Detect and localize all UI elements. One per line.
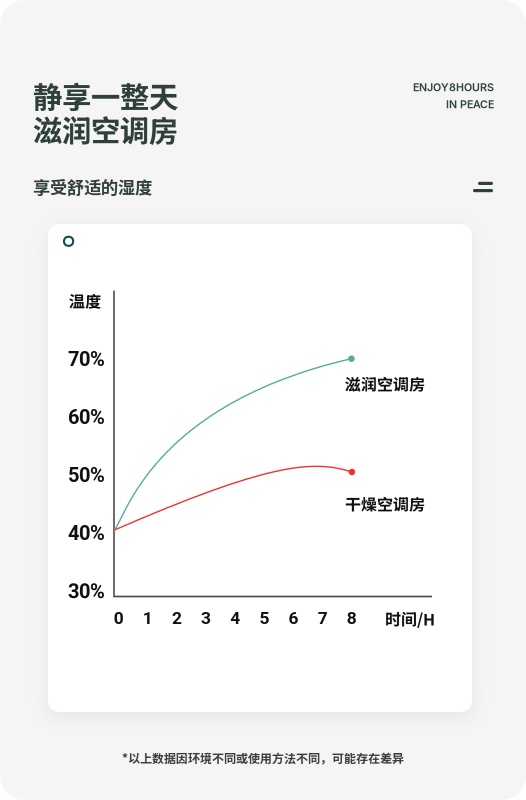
button[interactable]: Menu <box>453 172 493 202</box>
staticText: 50% <box>68 463 105 487</box>
staticText: IN PEACE <box>446 98 494 111</box>
staticText: 0 <box>114 608 124 628</box>
staticText: 60% <box>68 405 105 429</box>
staticText: 1 <box>143 608 153 628</box>
staticText: 30% <box>68 580 105 603</box>
staticText: 享受舒适的湿度 <box>33 174 152 199</box>
staticText: 滋润空调房 <box>33 107 178 150</box>
staticText: 静享一整天 <box>33 74 178 116</box>
staticText: 滋润空调房 <box>345 372 425 395</box>
staticText: 40% <box>68 521 105 545</box>
staticText: 温度 <box>69 289 101 312</box>
staticText: 7 <box>318 608 328 628</box>
staticText: 5 <box>259 608 269 628</box>
staticText: 4 <box>230 608 240 628</box>
staticText: 干燥空调房 <box>345 492 425 515</box>
staticText: 8 <box>347 608 357 628</box>
staticText: 6 <box>288 608 298 628</box>
staticText: ENJOY8HOURS <box>413 81 494 94</box>
staticText: 70% <box>68 347 105 371</box>
staticText: *以上数据因环境不同或使用方法不同，可能存在差异 <box>122 749 404 766</box>
staticText: 2 <box>172 608 182 628</box>
staticText: 时间/H <box>385 607 435 630</box>
staticText: 3 <box>201 608 211 628</box>
